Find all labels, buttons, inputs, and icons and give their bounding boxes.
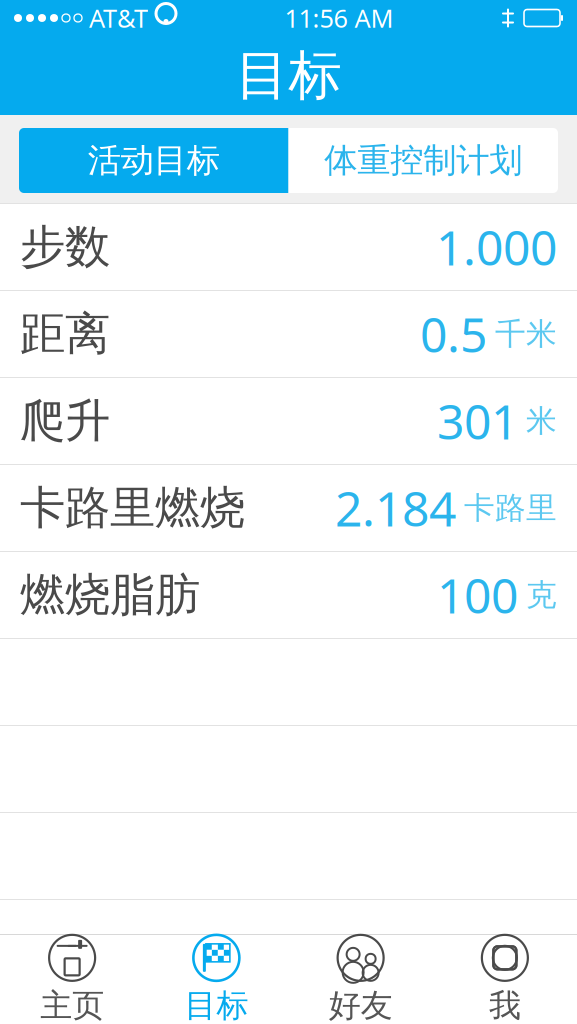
- staticText: 卡路里燃烧: [20, 480, 245, 536]
- staticText: 目标: [235, 43, 341, 108]
- staticText: 体重控制计划: [324, 140, 522, 181]
- staticText: 2.184: [335, 476, 456, 540]
- staticText: 目标: [184, 986, 248, 1024]
- staticText: 卡路里: [464, 489, 557, 527]
- staticText: 0.5: [420, 302, 487, 366]
- button[interactable]: 主页: [0, 935, 144, 1024]
- button[interactable]: 距离: [0, 291, 577, 378]
- staticText: 距离: [20, 306, 110, 362]
- staticText: 301: [437, 389, 518, 453]
- button[interactable]: 燃烧脂肪: [0, 552, 577, 639]
- button[interactable]: 目标: [144, 935, 288, 1024]
- staticText: 主页: [40, 986, 104, 1024]
- staticText: 100: [437, 563, 518, 627]
- button[interactable]: 步数: [0, 204, 577, 291]
- staticText: 克: [526, 576, 557, 614]
- staticText: AT&T: [89, 1, 148, 35]
- button[interactable]: 我: [433, 935, 577, 1024]
- staticText: 活动目标: [88, 140, 220, 181]
- staticText: 千米: [495, 315, 557, 353]
- button[interactable]: 好友: [288, 935, 433, 1024]
- button[interactable]: 爬升: [0, 378, 577, 465]
- button[interactable]: 卡路里燃烧: [0, 465, 577, 552]
- button[interactable]: 活动目标: [19, 128, 288, 193]
- staticText: 米: [526, 402, 557, 440]
- staticText: 爬升: [20, 393, 110, 449]
- staticText: 燃烧脂肪: [20, 567, 200, 623]
- staticText: 我: [489, 986, 521, 1024]
- button[interactable]: 体重控制计划: [288, 128, 558, 193]
- staticText: 步数: [20, 219, 110, 275]
- staticText: 11:56 AM: [284, 1, 393, 35]
- staticText: 1.000: [436, 215, 557, 279]
- staticText: 好友: [329, 986, 393, 1024]
